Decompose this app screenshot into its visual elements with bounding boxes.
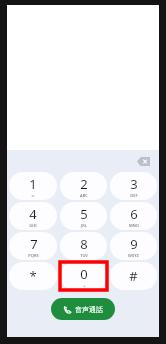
button[interactable]: Backspace xyxy=(134,154,152,168)
staticText: DEF xyxy=(130,193,138,198)
button[interactable]: 5 xyxy=(60,202,107,230)
staticText: # xyxy=(129,267,138,285)
button[interactable]: * xyxy=(9,262,57,290)
staticText: 8 xyxy=(80,235,88,253)
staticText: 6 xyxy=(130,205,138,223)
staticText: 1 xyxy=(29,175,37,193)
staticText: WXYZ xyxy=(128,253,139,258)
button[interactable]: 6 xyxy=(110,202,157,230)
staticText: MNO xyxy=(129,223,139,228)
button[interactable]: 1 xyxy=(9,172,57,200)
staticText: 2 xyxy=(80,175,88,193)
staticText: 4 xyxy=(29,205,37,223)
staticText: 3 xyxy=(130,175,138,193)
staticText: 7 xyxy=(30,235,38,253)
staticText: TUV xyxy=(80,253,88,258)
button[interactable]: 4 xyxy=(9,202,57,230)
staticText: * xyxy=(29,267,37,285)
button[interactable]: 8 xyxy=(60,232,107,260)
staticText: 5 xyxy=(80,205,88,223)
staticText: 音声通話 xyxy=(75,305,103,314)
button[interactable]: 3 xyxy=(110,172,157,200)
staticText: 0 xyxy=(80,265,88,283)
staticText: + xyxy=(83,283,86,288)
button[interactable]: 音声通話 xyxy=(51,298,115,320)
staticText: ∞ xyxy=(31,193,35,198)
button[interactable]: # xyxy=(110,262,157,290)
button[interactable]: 9 xyxy=(110,232,157,260)
button[interactable]: 2 xyxy=(60,172,107,200)
button[interactable]: 0 xyxy=(60,262,107,290)
staticText: GHI xyxy=(29,223,37,228)
staticText: PQRS xyxy=(28,253,39,258)
staticText: JKL xyxy=(81,223,87,228)
staticText: 9 xyxy=(130,235,138,253)
staticText: ABC xyxy=(80,193,88,198)
button[interactable]: 7 xyxy=(9,232,57,260)
